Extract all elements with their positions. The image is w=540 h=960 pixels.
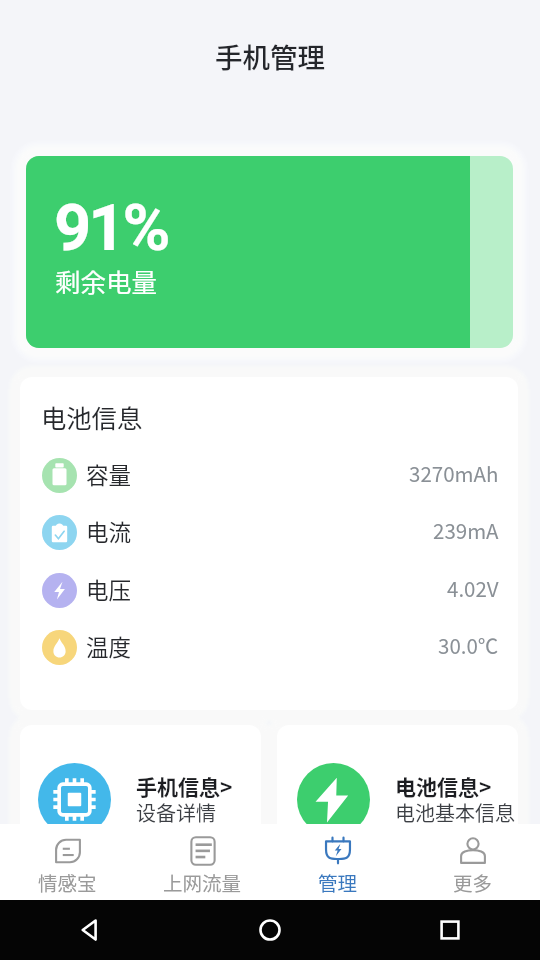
staticText: 情感宝	[38, 868, 97, 896]
button[interactable]: 温度	[20, 619, 518, 676]
staticText: 电流	[86, 515, 132, 548]
button[interactable]: 管理	[270, 824, 405, 900]
button[interactable]: 电压	[20, 562, 518, 619]
button[interactable]: 情感宝	[0, 824, 135, 900]
staticText: 更多	[453, 868, 493, 896]
staticText: 管理	[318, 868, 358, 896]
staticText: 电压	[86, 573, 132, 606]
other: Recents	[436, 916, 464, 944]
staticText: 容量	[86, 458, 132, 491]
other: Back	[76, 916, 104, 944]
staticText: 91%	[54, 190, 168, 266]
button[interactable]: 更多	[405, 824, 540, 900]
staticText: 4.02V	[447, 573, 499, 603]
staticText: 239mA	[433, 515, 499, 545]
button[interactable]: 91%	[26, 156, 513, 348]
staticText: 剩余电量	[55, 262, 158, 299]
staticText: 电池基本信息	[395, 798, 515, 827]
button[interactable]: 电流	[20, 504, 518, 561]
staticText: 电池信息>	[395, 771, 492, 801]
staticText: 上网流量	[163, 868, 242, 896]
other: Home	[256, 916, 284, 944]
staticText: 手机管理	[215, 36, 325, 76]
staticText: 3270mAh	[409, 458, 499, 488]
staticText: 设备详情	[136, 798, 216, 827]
staticText: 温度	[86, 630, 132, 663]
staticText: 手机信息>	[136, 771, 233, 801]
staticText: 电池信息	[41, 399, 143, 436]
button[interactable]: 手机信息>	[20, 725, 261, 840]
button[interactable]: 容量	[20, 447, 518, 504]
button[interactable]: 上网流量	[135, 824, 270, 900]
button[interactable]: 电池信息>	[277, 725, 518, 840]
staticText: 30.0℃	[438, 630, 499, 660]
